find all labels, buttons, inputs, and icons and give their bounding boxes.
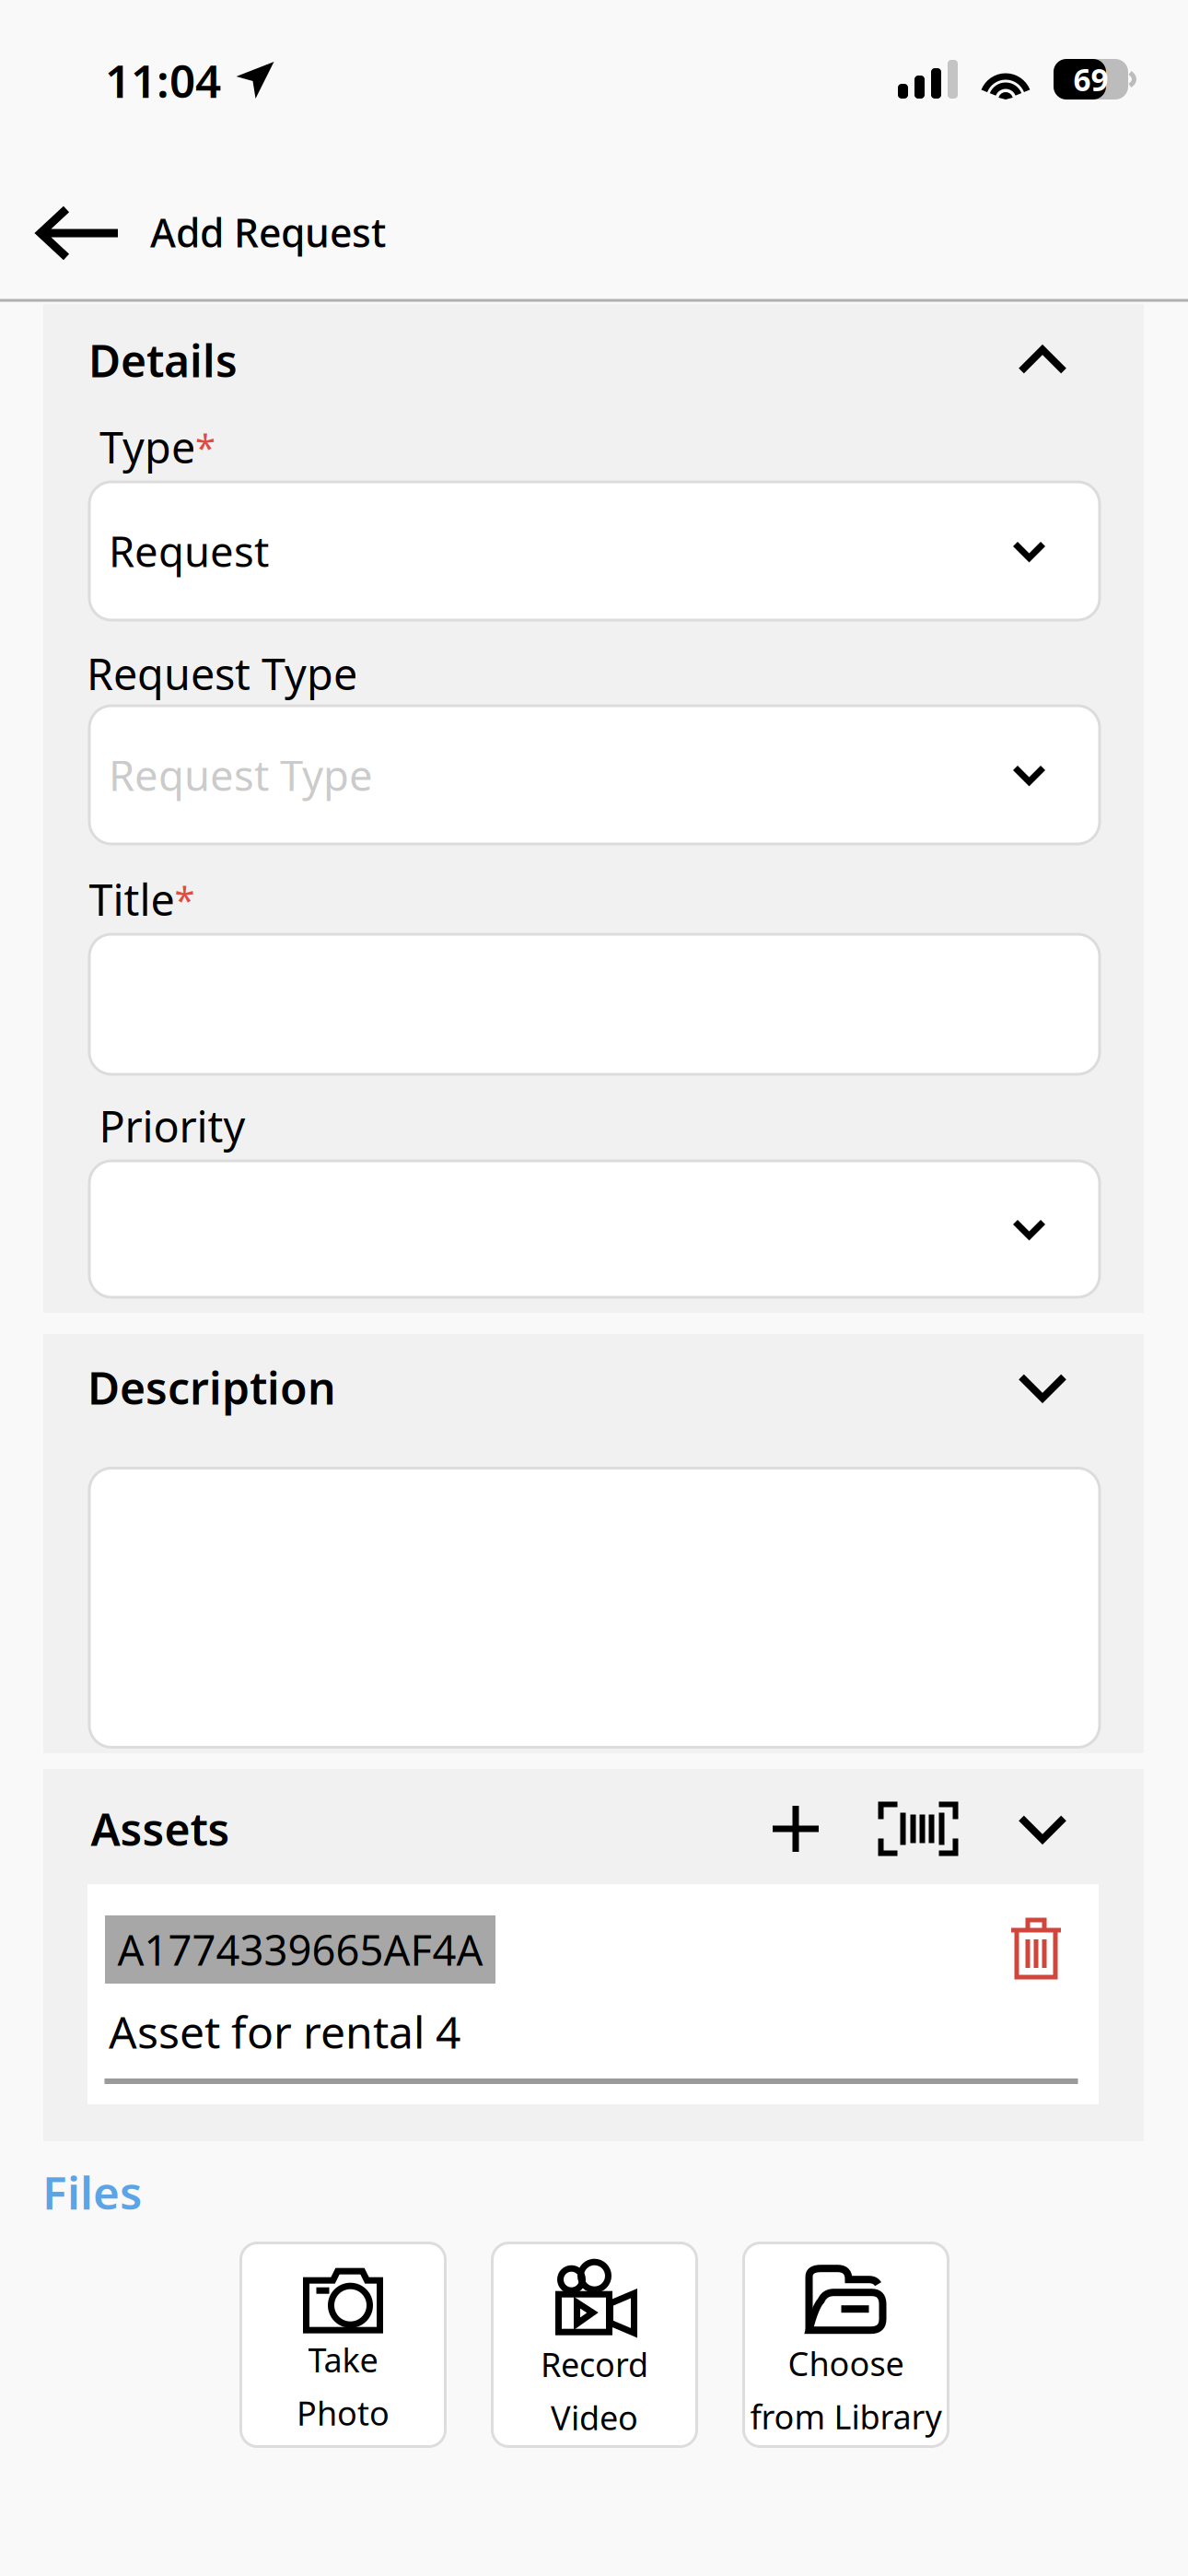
staticText: Request Type xyxy=(109,747,373,803)
button[interactable]: Expand Assets xyxy=(992,1785,1093,1873)
button[interactable]: Scan barcode xyxy=(863,1785,973,1873)
staticText: Details xyxy=(88,331,238,390)
staticText: Record xyxy=(541,2342,648,2386)
staticText: Priority xyxy=(99,1097,245,1154)
staticText: Add Request xyxy=(150,206,386,258)
staticText: 11:04 xyxy=(105,50,221,110)
staticText: Request xyxy=(109,523,269,579)
button[interactable]: Record xyxy=(492,2243,697,2447)
button[interactable] xyxy=(89,934,1100,1074)
staticText: * xyxy=(195,422,215,471)
staticText: from Library xyxy=(750,2395,942,2439)
button[interactable]: Request Type xyxy=(89,706,1100,844)
staticText: Description xyxy=(87,1358,336,1417)
staticText: Type xyxy=(99,418,195,475)
button[interactable]: Expand Description xyxy=(992,1343,1093,1432)
button[interactable]: Take xyxy=(241,2243,445,2447)
button[interactable]: Choose xyxy=(744,2243,948,2447)
staticText: Files xyxy=(42,2162,142,2222)
staticText: Choose xyxy=(788,2341,904,2385)
staticText: Assets xyxy=(91,1799,230,1858)
staticText: Take xyxy=(308,2338,378,2382)
button[interactable] xyxy=(89,1468,1100,1747)
button[interactable]: Request xyxy=(89,482,1100,620)
button[interactable]: Back xyxy=(10,182,148,284)
staticText: A1774339665AF4A xyxy=(117,1922,483,1977)
staticText: 69 xyxy=(1073,59,1108,100)
button[interactable]: Delete asset xyxy=(999,1906,1073,1989)
staticText: Photo xyxy=(297,2391,390,2435)
button[interactable] xyxy=(89,1161,1100,1297)
button[interactable]: Add asset xyxy=(751,1785,840,1873)
staticText: Title xyxy=(89,871,175,928)
staticText: Request Type xyxy=(87,645,357,702)
staticText: * xyxy=(175,875,195,924)
staticText: Video xyxy=(551,2395,638,2439)
staticText: Asset for rental 4 xyxy=(109,2002,460,2061)
button[interactable]: Collapse Details xyxy=(992,316,1093,404)
